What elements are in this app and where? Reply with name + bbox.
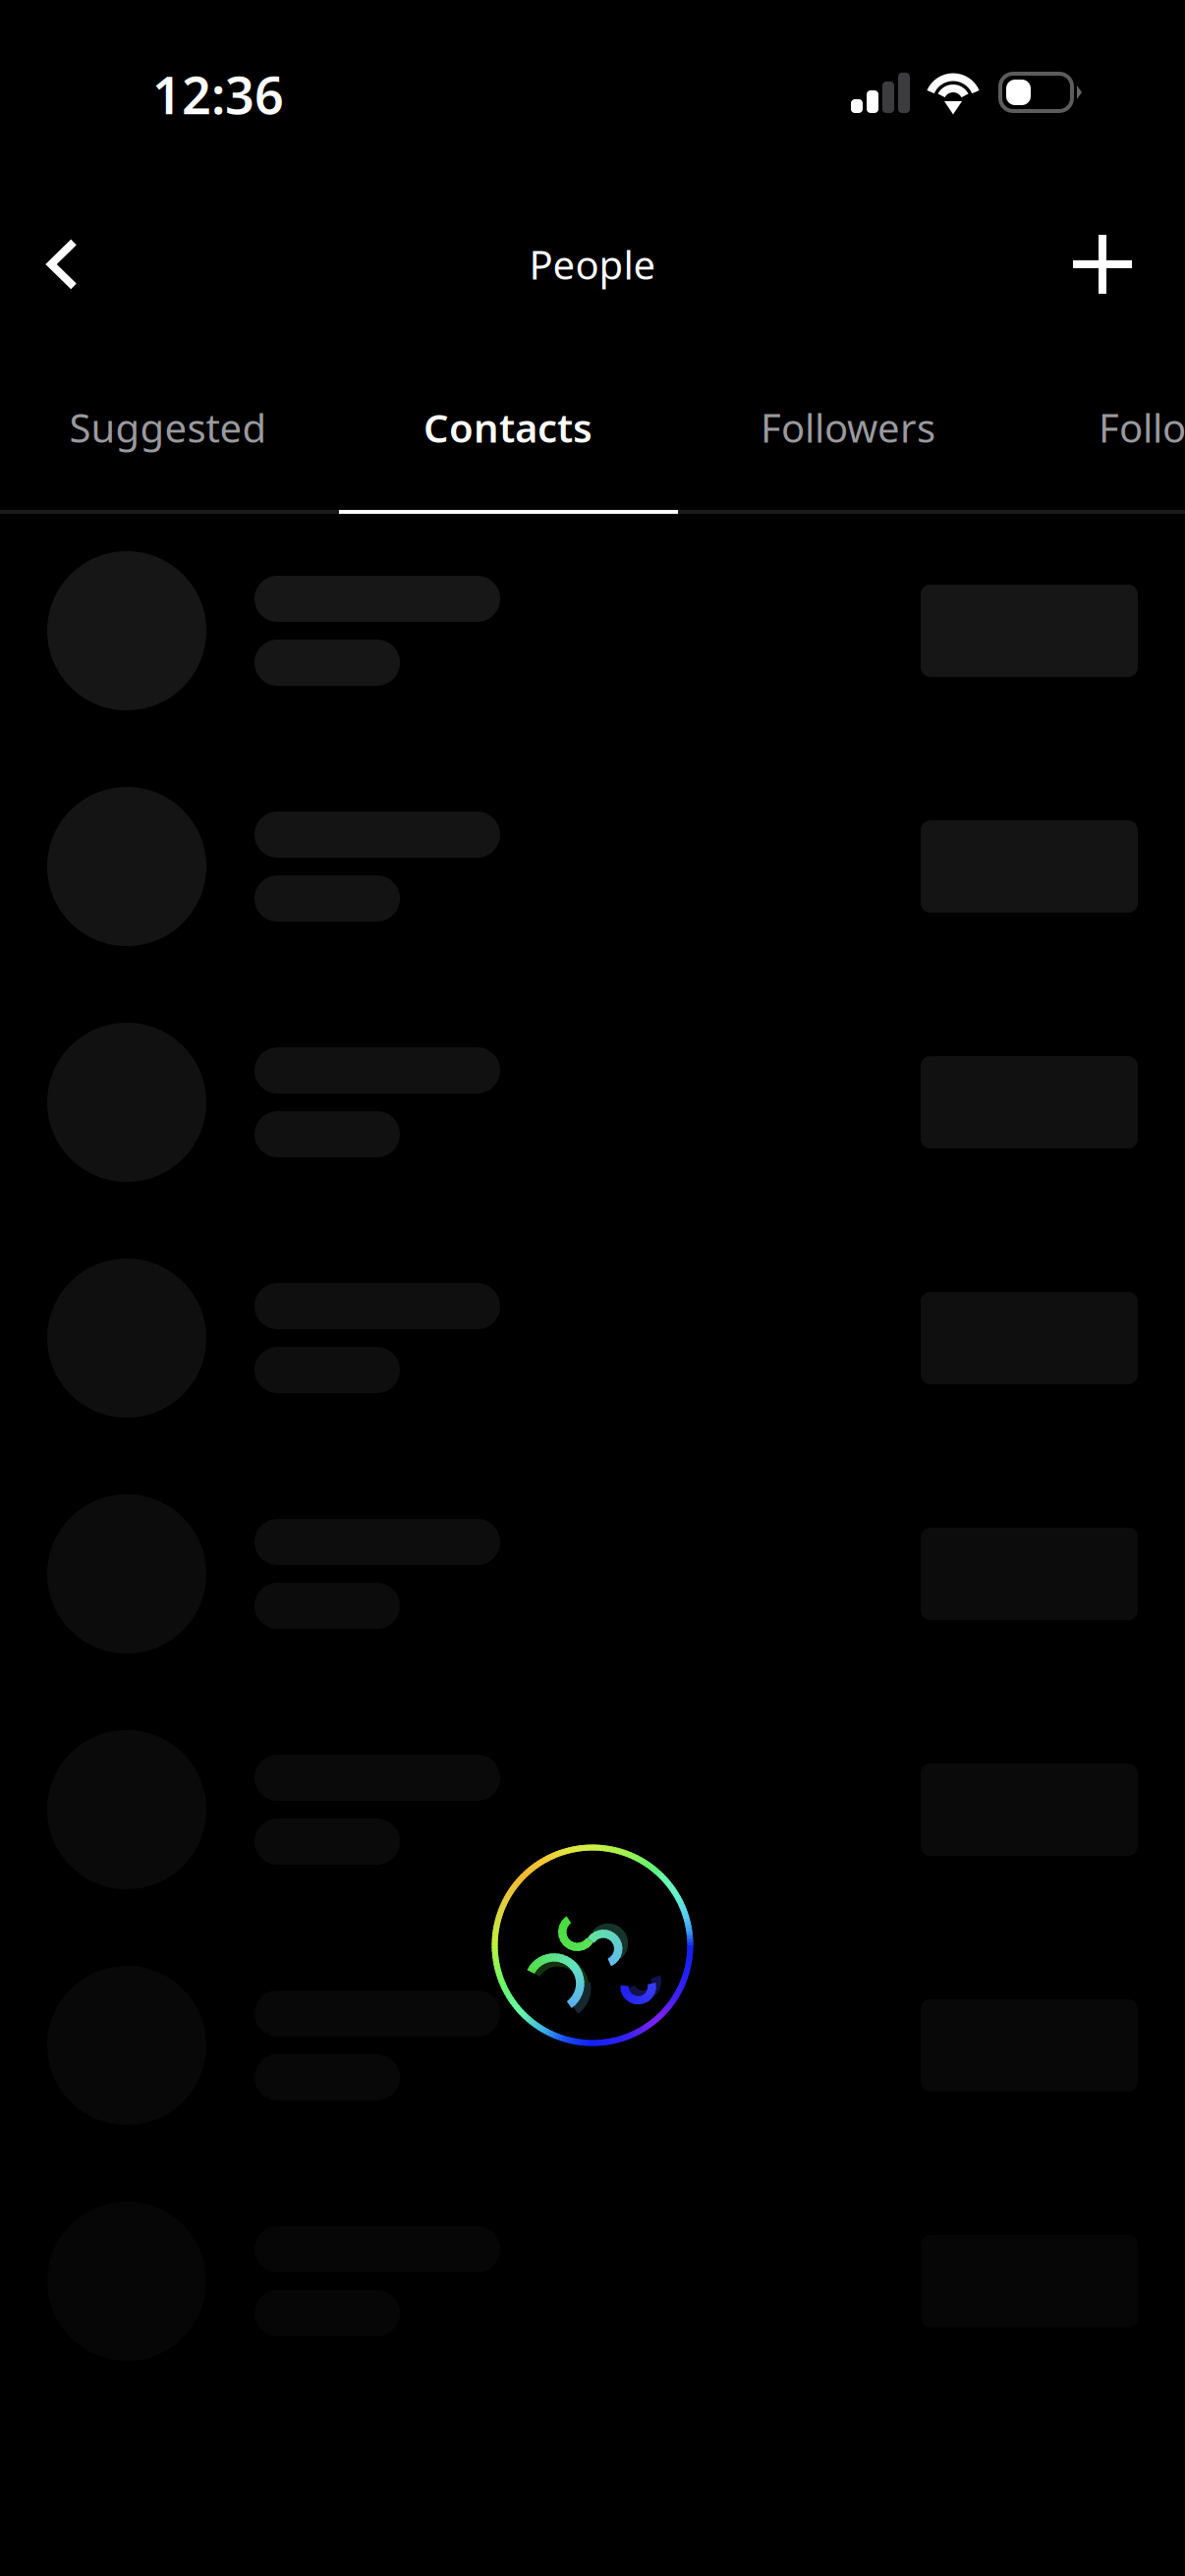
button[interactable]: Add	[1057, 205, 1185, 323]
button[interactable]: Loading contact	[0, 551, 1185, 710]
button[interactable]: Loading contact	[0, 1494, 1185, 1653]
button[interactable]: Loading contact	[0, 1730, 1185, 1889]
button[interactable]: Followers	[710, 368, 986, 486]
staticText: 12:36	[152, 60, 284, 128]
button[interactable]: Follo	[1099, 368, 1185, 486]
button[interactable]: Suggested	[26, 368, 310, 486]
button[interactable]: Back	[0, 205, 128, 323]
button[interactable]: Loading contact	[0, 1023, 1185, 1182]
button[interactable]: Loading contact	[0, 1259, 1185, 1418]
staticText: People	[529, 238, 656, 290]
staticText: Suggested	[69, 401, 267, 453]
staticText: Followers	[761, 401, 935, 453]
staticText: Follo	[1099, 401, 1185, 453]
button[interactable]: Loading contact	[0, 1966, 1185, 2125]
staticText: Contacts	[423, 401, 592, 453]
button[interactable]: Contacts	[339, 368, 677, 486]
button[interactable]: Loading contact	[0, 787, 1185, 946]
